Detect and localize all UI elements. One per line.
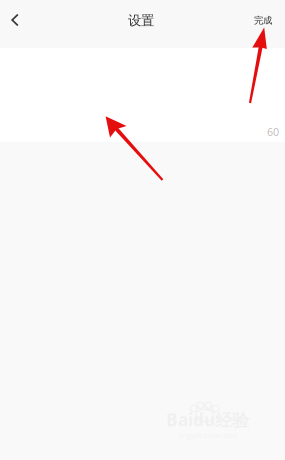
button[interactable]: 返回 bbox=[2, 4, 36, 44]
button[interactable]: 完成 bbox=[244, 4, 282, 44]
staticText: Baidu经验 bbox=[166, 408, 249, 431]
staticText: 设置 bbox=[128, 12, 154, 29]
button[interactable]: 签名输入框，还可输入 60 字 bbox=[0, 48, 285, 142]
staticText: 完成 bbox=[254, 15, 272, 26]
staticText: 60 bbox=[267, 125, 279, 139]
